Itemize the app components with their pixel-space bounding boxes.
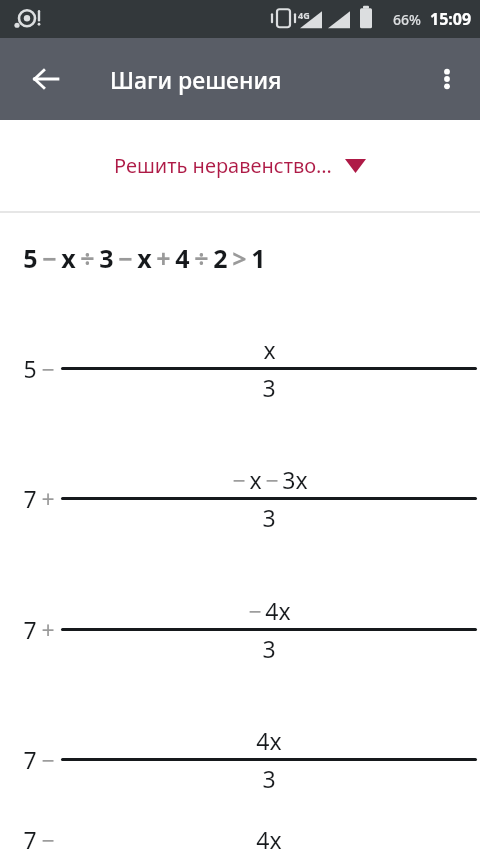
- staticText: 3: [262, 633, 276, 664]
- staticText: 7: [23, 614, 37, 645]
- staticText: 4x: [265, 595, 291, 626]
- staticText: 4x: [256, 824, 282, 854]
- staticText: x: [137, 241, 152, 275]
- staticText: 3: [262, 372, 276, 403]
- staticText: −: [248, 595, 262, 626]
- staticText: −: [118, 241, 133, 275]
- staticText: x: [61, 241, 76, 275]
- staticText: >: [232, 241, 247, 275]
- staticText: 66%: [393, 10, 421, 29]
- staticText: −: [41, 744, 55, 775]
- staticText: 3: [99, 241, 114, 275]
- staticText: −: [42, 241, 57, 275]
- staticText: Решить неравенство…: [114, 152, 332, 179]
- staticText: −: [232, 464, 246, 495]
- staticText: −: [41, 824, 55, 854]
- button[interactable]: 5: [0, 213, 480, 303]
- staticText: +: [41, 483, 55, 514]
- staticText: x: [249, 464, 262, 495]
- staticText: 5: [23, 241, 38, 275]
- staticText: 7: [23, 483, 37, 514]
- staticText: 15:09: [430, 8, 472, 30]
- button[interactable]: 7: [0, 694, 480, 824]
- staticText: 4: [175, 241, 190, 275]
- staticText: 3x: [282, 464, 308, 495]
- staticText: 5: [23, 353, 37, 384]
- button[interactable]: 5: [0, 303, 480, 433]
- staticText: +: [41, 614, 55, 645]
- staticText: 3: [262, 502, 276, 533]
- staticText: ÷: [80, 241, 95, 275]
- staticText: ÷: [194, 241, 209, 275]
- staticText: 4x: [256, 725, 282, 756]
- staticText: 7: [23, 744, 37, 775]
- staticText: 1: [251, 241, 266, 275]
- button[interactable]: Назад: [20, 53, 72, 105]
- staticText: x: [263, 334, 276, 365]
- button[interactable]: Ещё: [421, 53, 473, 105]
- button[interactable]: 7: [0, 433, 480, 564]
- button[interactable]: 7: [0, 824, 480, 854]
- staticText: 3: [262, 763, 276, 794]
- staticText: −: [265, 464, 279, 495]
- staticText: Шаги решения: [110, 64, 282, 95]
- staticText: +: [156, 241, 171, 275]
- staticText: 7: [23, 824, 37, 854]
- staticText: 2: [213, 241, 228, 275]
- staticText: −: [41, 353, 55, 384]
- button[interactable]: 7: [0, 564, 480, 694]
- staticText: 4G: [298, 9, 310, 21]
- button[interactable]: Решить неравенство…: [0, 120, 480, 211]
